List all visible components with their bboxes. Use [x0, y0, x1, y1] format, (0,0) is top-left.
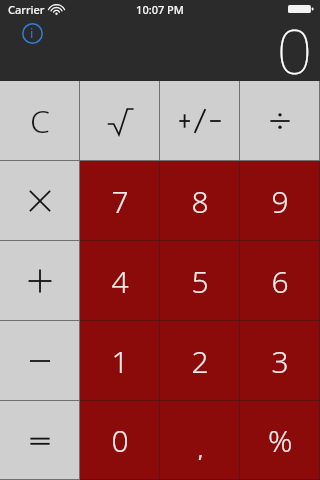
button[interactable]: 2 — [160, 321, 240, 401]
staticText: 0 — [276, 8, 312, 89]
button[interactable]: Divide — [240, 81, 320, 161]
button[interactable]: Multiply — [0, 161, 80, 241]
staticText: 2 — [191, 341, 209, 382]
staticText: 4 — [111, 261, 129, 302]
staticText: Carrier — [8, 2, 45, 17]
staticText: 3 — [271, 341, 289, 382]
button[interactable]: Info — [17, 18, 47, 48]
button[interactable]: 5 — [160, 241, 240, 321]
staticText: C — [30, 99, 50, 143]
staticText: 5 — [191, 261, 209, 302]
staticText: i — [30, 24, 34, 42]
button[interactable]: 8 — [160, 161, 240, 241]
staticText: 9 — [271, 181, 289, 222]
staticText: 0 — [111, 420, 129, 461]
button[interactable]: Decimal separator — [160, 401, 240, 480]
button[interactable]: 3 — [240, 321, 320, 401]
staticText: 10:07 PM — [136, 2, 184, 17]
button[interactable]: Percent — [240, 401, 320, 480]
button[interactable]: 9 — [240, 161, 320, 241]
staticText: 8 — [191, 181, 209, 222]
button[interactable]: Equals — [0, 401, 80, 480]
staticText: 1 — [111, 341, 129, 382]
button[interactable]: Square root — [80, 81, 160, 161]
staticText: 6 — [271, 261, 289, 302]
button[interactable]: 6 — [240, 241, 320, 321]
staticText: 7 — [111, 181, 129, 222]
button[interactable]: 1 — [80, 321, 160, 401]
button[interactable]: C — [0, 81, 80, 161]
button[interactable]: Plus — [0, 241, 80, 321]
button[interactable]: 4 — [80, 241, 160, 321]
button[interactable]: Plus minus — [160, 81, 240, 161]
button[interactable]: 7 — [80, 161, 160, 241]
button[interactable]: Minus — [0, 321, 80, 401]
staticText: , — [197, 426, 204, 460]
button[interactable]: 0 — [80, 401, 160, 480]
staticText: % — [268, 420, 293, 461]
